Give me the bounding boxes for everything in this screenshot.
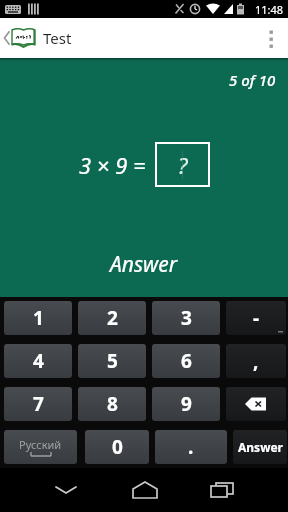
button[interactable]: 3 <box>152 301 220 335</box>
staticText: 6 <box>181 348 192 374</box>
button[interactable]: Answer <box>233 430 287 464</box>
staticText: . <box>188 434 194 460</box>
staticText: - <box>253 305 260 331</box>
button[interactable] <box>121 468 169 512</box>
button[interactable]: ? <box>155 142 210 187</box>
staticText: , <box>253 348 259 374</box>
staticText: 11:48 <box>255 2 284 17</box>
button[interactable]: 9 <box>152 387 220 421</box>
staticText: 2 <box>107 305 118 331</box>
button[interactable]: 8 <box>78 387 146 421</box>
staticText: Test <box>43 28 72 48</box>
staticText: 3 <box>181 305 192 331</box>
staticText: Русский <box>19 437 62 452</box>
button[interactable]: , <box>226 344 286 378</box>
staticText: 5 <box>107 348 118 374</box>
button[interactable]: 0 <box>85 430 149 464</box>
button[interactable]: 7 <box>4 387 72 421</box>
staticText: 4 <box>33 348 44 374</box>
staticText: 1 <box>33 305 44 331</box>
button[interactable]: 5 <box>78 344 146 378</box>
staticText: 0 <box>112 434 123 460</box>
staticText: 8 <box>107 391 118 417</box>
staticText: Answer <box>110 250 178 279</box>
staticText: 7 <box>33 391 44 417</box>
button[interactable]: Русский <box>4 430 77 464</box>
button[interactable] <box>198 468 246 512</box>
staticText: 5 of 10 <box>229 70 276 90</box>
staticText: 3 × 9 = <box>79 150 146 180</box>
staticText: ? <box>178 150 188 180</box>
staticText: 9 <box>181 391 192 417</box>
button[interactable] <box>254 18 288 58</box>
button[interactable]: 6 <box>152 344 220 378</box>
button[interactable]: Answer <box>110 250 178 279</box>
button[interactable] <box>226 387 286 421</box>
button[interactable]: 4 <box>4 344 72 378</box>
button[interactable] <box>42 468 90 512</box>
button[interactable]: 2 <box>78 301 146 335</box>
button[interactable]: . <box>155 430 227 464</box>
staticText: Answer <box>238 439 283 455</box>
button[interactable]: Test <box>0 18 72 58</box>
button[interactable]: 1 <box>4 301 72 335</box>
button[interactable]: - <box>226 301 286 335</box>
